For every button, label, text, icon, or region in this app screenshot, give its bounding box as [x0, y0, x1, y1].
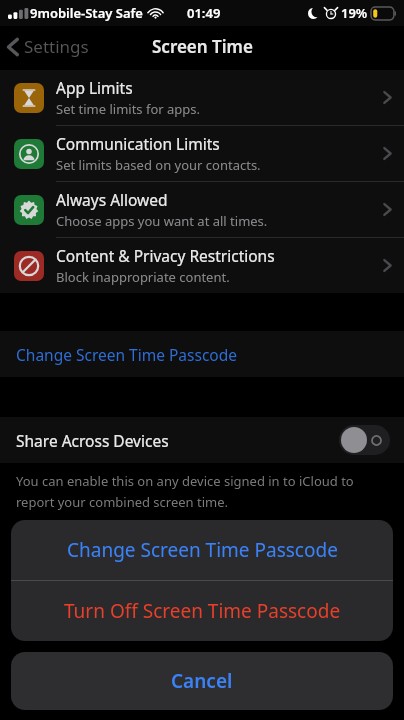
- button[interactable]: Content & Privacy Restrictions: [0, 238, 404, 293]
- button[interactable]: Share Across Devices: [0, 417, 404, 463]
- staticText: 19%: [341, 4, 368, 22]
- button[interactable]: App Limits: [0, 70, 404, 125]
- button[interactable]: Communication Limits: [0, 126, 404, 181]
- staticText: 9mobile-Stay Safe: [30, 4, 143, 22]
- staticText: Turn Off Screen Time Passcode: [64, 598, 341, 624]
- staticText: Set limits based on your contacts.: [56, 156, 261, 174]
- staticText: Communication Limits: [56, 133, 220, 154]
- button[interactable]: Change Screen Time Passcode: [11, 520, 393, 580]
- staticText: Block inappropriate content.: [56, 268, 230, 286]
- button[interactable]: Change Screen Time Passcode: [0, 331, 404, 377]
- staticText: Share Across Devices: [16, 430, 169, 451]
- button[interactable]: Turn Off Screen Time Passcode: [11, 581, 393, 641]
- button[interactable]: Cancel: [11, 652, 393, 710]
- staticText: Change Screen Time Passcode: [16, 344, 237, 365]
- staticText: 01:49: [187, 4, 221, 22]
- staticText: Content & Privacy Restrictions: [56, 245, 275, 266]
- staticText: Cancel: [171, 668, 233, 694]
- button[interactable]: Share Across Devices toggle: [339, 425, 390, 455]
- staticText: You can enable this on any device signed…: [16, 472, 354, 490]
- staticText: Change Screen Time Passcode: [67, 537, 338, 563]
- staticText: App Limits: [56, 77, 133, 98]
- staticText: Always Allowed: [56, 189, 168, 210]
- staticText: Choose apps you want at all times.: [56, 212, 268, 230]
- button[interactable]: Settings: [0, 31, 97, 62]
- staticText: Screen Time: [152, 35, 253, 58]
- staticText: Set time limits for apps.: [56, 100, 201, 118]
- button[interactable]: Always Allowed: [0, 182, 404, 237]
- staticText: report your combined screen time.: [16, 493, 229, 511]
- staticText: Settings: [24, 35, 89, 58]
